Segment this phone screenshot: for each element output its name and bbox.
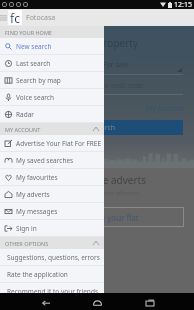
button[interactable]: My messages: [0, 203, 104, 220]
staticText: Search: [93, 123, 116, 133]
button[interactable]: My favourites: [0, 169, 104, 186]
button[interactable]: Radar: [0, 106, 104, 123]
button[interactable]: MY ACCOUNT: [0, 123, 104, 135]
staticText: My messages: [16, 207, 58, 216]
button[interactable]: FIND YOUR HOME: [0, 26, 104, 38]
staticText: My saved searches: [16, 156, 74, 165]
staticText: Sign in: [16, 224, 37, 233]
button[interactable]: My position: [146, 104, 185, 114]
button[interactable]: Search: [25, 120, 183, 135]
staticText: fc: [10, 10, 20, 25]
button[interactable]: Rate the application: [0, 266, 104, 283]
staticText: MY ACCOUNT: [5, 126, 41, 133]
staticText: New search: [16, 42, 52, 51]
staticText: Voice search: [16, 93, 54, 102]
button[interactable]: New search: [0, 38, 104, 55]
button[interactable]: Voice search: [0, 89, 104, 106]
button[interactable]: My adverts: [0, 186, 104, 203]
staticText: Fotocasa: [26, 13, 56, 23]
button[interactable]: Recommend it to your friends: [0, 283, 104, 300]
staticText: For sale: [103, 60, 129, 70]
button[interactable]: Open navigation drawer: [0, 9, 8, 26]
button[interactable]: My saved searches: [0, 152, 104, 169]
staticText: Town or post code: [83, 81, 144, 91]
staticText: Last search: [16, 59, 51, 68]
button[interactable]: Search by map: [0, 72, 104, 89]
staticText: Search by map: [16, 76, 61, 85]
staticText: Rate the application: [7, 270, 68, 279]
staticText: Free adverts: [88, 173, 147, 187]
staticText: 12:15: [174, 0, 192, 9]
button[interactable]: OTHER OPTIONS: [0, 237, 104, 249]
button[interactable]: Last search: [0, 55, 104, 72]
staticText: OTHER OPTIONS: [5, 240, 49, 247]
button[interactable]: Back: [37, 294, 53, 310]
staticText: My adverts: [16, 190, 50, 199]
button[interactable]: Recent apps: [142, 294, 158, 310]
button[interactable]: Home: [89, 294, 105, 310]
staticText: Recommend it to your friends: [7, 287, 99, 296]
button[interactable]: Advertise your flat: [25, 207, 184, 227]
staticText: Fast and effective: [90, 189, 140, 197]
staticText: Advertise Your Flat For FREE: [16, 139, 102, 148]
staticText: Advertise your flat: [70, 212, 139, 223]
button[interactable]: Suggestions, questions, errors: [0, 249, 104, 266]
staticText: My position: [146, 104, 185, 114]
button[interactable]: Advertise Your Flat For FREE: [0, 135, 104, 152]
staticText: Suggestions, questions, errors: [7, 253, 100, 262]
staticText: FIND YOUR HOME: [5, 29, 52, 36]
staticText: My favourites: [16, 173, 58, 182]
button[interactable]: Sign in: [0, 220, 104, 237]
staticText: Radar: [16, 110, 35, 119]
staticText: Search property: [63, 36, 139, 50]
